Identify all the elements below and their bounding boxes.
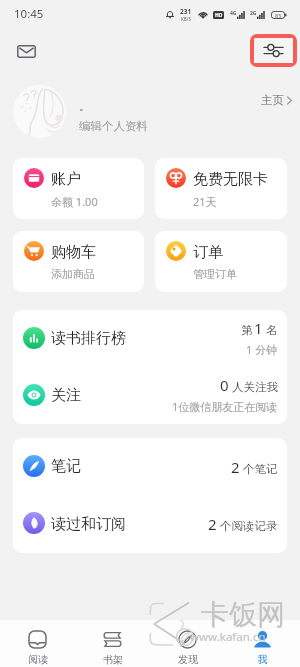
staticText: 0	[220, 375, 229, 395]
staticText: 购物车	[51, 243, 96, 262]
staticText: 书架	[103, 653, 123, 666]
staticText: 2G	[250, 10, 257, 17]
button[interactable]: Messages	[11, 39, 42, 63]
staticText: 关注	[51, 386, 81, 405]
button[interactable]: 关注	[13, 367, 287, 424]
staticText: 。	[79, 99, 90, 113]
staticText: 主页	[261, 93, 284, 107]
staticText: KB/S	[181, 16, 191, 22]
staticText: 1	[254, 318, 263, 338]
staticText: 231	[180, 7, 192, 16]
button[interactable]: 账户	[13, 158, 144, 219]
staticText: 管理订单	[193, 267, 237, 281]
button[interactable]: 阅读	[0, 620, 75, 667]
button[interactable]: 读书排行榜	[13, 310, 287, 367]
button[interactable]: 订单	[155, 231, 287, 292]
staticText: 余额 1.00	[51, 194, 98, 209]
staticText: 笔记	[51, 457, 81, 476]
button[interactable]: 免费无限卡	[155, 158, 287, 219]
staticText: 4G	[230, 10, 237, 17]
staticText: 人关注我	[232, 380, 278, 394]
button[interactable]: 。	[0, 72, 300, 157]
staticText: 账户	[51, 170, 81, 189]
staticText: HD	[215, 12, 223, 19]
staticText: 添加商品	[51, 267, 95, 281]
button[interactable]: 发现	[150, 620, 225, 667]
button[interactable]: 书架	[75, 620, 150, 667]
staticText: 21天	[193, 194, 217, 209]
staticText: 名	[266, 323, 278, 337]
staticText: 发现	[178, 653, 198, 666]
button[interactable]: Settings	[254, 38, 293, 63]
staticText: 阅读	[28, 653, 48, 666]
staticText: 编辑个人资料	[79, 119, 148, 133]
staticText: 读过和订阅	[51, 515, 126, 534]
button[interactable]: 笔记	[13, 438, 287, 495]
staticText: 10:45	[14, 6, 44, 22]
staticText: www.kafan.cn	[190, 629, 266, 645]
button[interactable]: 购物车	[13, 231, 144, 292]
staticText: 免费无限卡	[193, 170, 268, 189]
staticText: 卡饭网	[201, 597, 285, 632]
button[interactable]: 读过和订阅	[13, 495, 287, 553]
staticText: 个阅读记录	[220, 519, 278, 533]
button[interactable]: 主页	[261, 93, 292, 107]
staticText: 1 分钟	[246, 342, 278, 357]
staticText: 订单	[193, 243, 223, 262]
staticText: 1位微信朋友正在阅读	[172, 399, 278, 414]
button[interactable]: 我	[225, 620, 300, 667]
staticText: 2	[208, 514, 217, 534]
staticText: 我	[258, 653, 268, 666]
staticText: 读书排行榜	[51, 329, 126, 348]
staticText: 2	[231, 457, 240, 477]
staticText: 85	[275, 12, 282, 19]
staticText: 第	[241, 323, 253, 337]
staticText: 个笔记	[243, 462, 278, 476]
